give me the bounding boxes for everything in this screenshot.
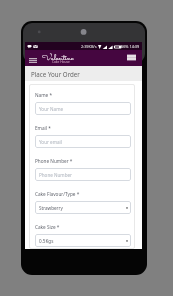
staticText: Cake Flavour/Type * (35, 191, 80, 197)
staticText: Email * (35, 125, 51, 131)
button[interactable]: Your Name (35, 102, 131, 115)
staticText: Your Name (39, 106, 64, 112)
staticText: Cake House (52, 60, 70, 64)
staticText: Your email (39, 139, 62, 145)
staticText: Cake Size * (35, 224, 60, 230)
staticText: 0.5Kgs (39, 238, 54, 244)
button[interactable]: Your email (35, 135, 131, 148)
button[interactable]: 0.5Kgs (35, 234, 131, 247)
button[interactable]: Strawberry (35, 201, 131, 214)
staticText: 56% 14:39 (121, 44, 140, 49)
button[interactable]: Open navigation menu (27, 56, 38, 65)
staticText: Strawberry (39, 205, 63, 211)
button[interactable]: Phone Number (35, 168, 131, 181)
staticText: Valentine (42, 51, 74, 64)
staticText: Phone Number * (35, 158, 73, 164)
button[interactable]: Menu (125, 52, 137, 63)
staticText: 2:39KB/s (81, 44, 97, 49)
staticText: Phone Number (39, 172, 72, 178)
staticText: Name * (35, 92, 53, 98)
staticText: Place Your Order (31, 70, 80, 78)
